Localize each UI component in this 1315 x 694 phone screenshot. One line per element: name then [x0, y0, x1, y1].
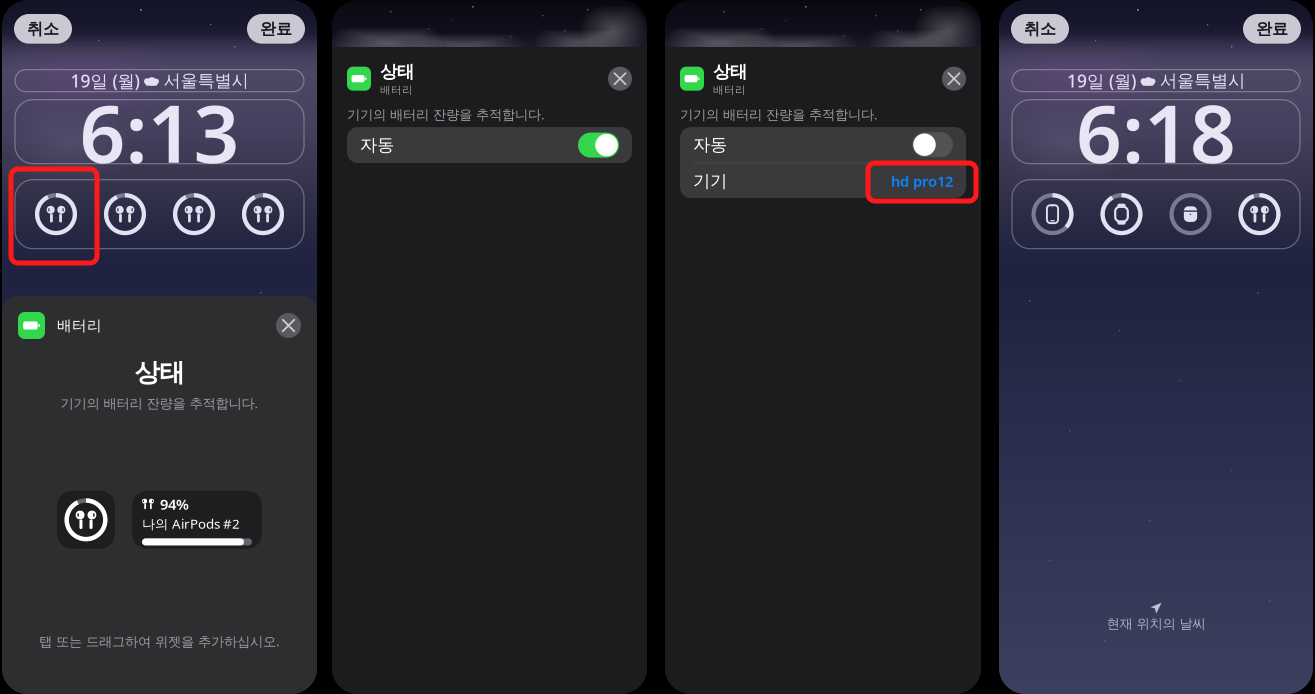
staticText: 나의 AirPods #2 — [142, 515, 240, 532]
staticText: 6:18 — [1076, 78, 1236, 185]
staticText: 기기의 배터리 잔량을 추적합니다. — [680, 105, 878, 123]
button[interactable]: 기기 — [680, 163, 966, 198]
button[interactable]: Battery widget — [1087, 186, 1156, 242]
staticText: 상태 — [380, 61, 414, 82]
button[interactable]: Battery widget — [228, 186, 297, 242]
button[interactable]: AirPods battery widget, small — [57, 491, 115, 549]
staticText: 완료 — [1256, 19, 1288, 39]
staticText: 상태 — [713, 61, 747, 82]
button[interactable]: Automatic, on — [578, 133, 619, 158]
button[interactable]: Battery widget — [1156, 186, 1225, 242]
staticText: 서울특별시 — [1160, 70, 1245, 91]
staticText: 94% — [160, 494, 189, 514]
button[interactable]: 취소 — [1011, 14, 1069, 44]
button[interactable]: 취소 — [14, 14, 72, 44]
button[interactable]: Close — [942, 67, 966, 91]
button[interactable]: Battery widget — [1225, 186, 1294, 242]
staticText: 완료 — [260, 19, 292, 39]
button[interactable]: Close — [276, 313, 301, 338]
staticText: 19일 (월) — [1067, 69, 1136, 92]
button[interactable]: Close — [608, 67, 632, 91]
staticText: 배터리 — [380, 83, 413, 96]
staticText: 19일 (월) — [71, 69, 140, 92]
staticText: hd pro12 — [891, 171, 953, 191]
button[interactable]: 완료 — [247, 14, 305, 44]
button[interactable]: Automatic, off — [912, 132, 953, 157]
staticText: 기기 — [693, 170, 727, 192]
staticText: 6:13 — [79, 78, 239, 185]
button[interactable]: Battery widget — [159, 186, 228, 242]
staticText: 배터리 — [713, 83, 746, 96]
button[interactable]: AirPods battery widget, medium — [132, 491, 262, 549]
staticText: 자동 — [360, 134, 394, 156]
staticText: 취소 — [1024, 19, 1056, 39]
staticText: 배터리 — [57, 316, 102, 334]
button[interactable]: 완료 — [1243, 14, 1301, 44]
staticText: 취소 — [27, 19, 59, 39]
staticText: 서울특별시 — [163, 70, 248, 91]
button[interactable]: Battery widget — [21, 186, 90, 242]
staticText: 현재 위치의 날씨 — [1106, 616, 1205, 632]
button[interactable]: Battery widget — [90, 186, 159, 242]
staticText: 상태 — [134, 357, 184, 388]
button[interactable]: Battery widget — [1018, 186, 1087, 242]
staticText: 기기의 배터리 잔량을 추적합니다. — [347, 105, 545, 123]
staticText: 자동 — [693, 134, 727, 155]
staticText: 기기의 배터리 잔량을 추적합니다. — [60, 394, 258, 412]
staticText: 탭 또는 드래그하여 위젯을 추가하십시오. — [39, 632, 280, 650]
